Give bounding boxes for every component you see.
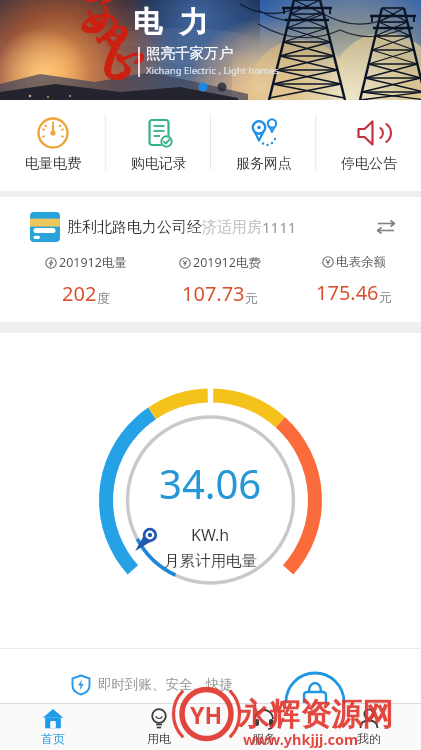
staticText: 购电记录: [131, 155, 187, 173]
button[interactable]: 用电: [106, 704, 211, 750]
staticText: 34.06: [159, 456, 262, 510]
staticText: 昌: [89, 18, 153, 80]
staticText: 电 力: [133, 1, 214, 41]
staticText: 201912电量: [59, 254, 127, 271]
button[interactable]: 首页: [0, 704, 106, 750]
staticText: 即时到账、安全、快捷: [98, 676, 233, 693]
button[interactable]: 201912电量: [18, 254, 153, 307]
button[interactable]: 服务网点: [211, 100, 316, 191]
button[interactable]: [285, 672, 345, 703]
button[interactable]: [375, 219, 397, 235]
staticText: 202: [62, 280, 97, 307]
staticText: Xichang Electric , Light homes: [146, 64, 279, 77]
staticText: 用电: [147, 731, 171, 746]
staticText: 度: [97, 290, 110, 306]
button[interactable]: 电量电费: [0, 100, 106, 191]
staticText: 首页: [41, 731, 65, 746]
staticText: www.yhkjjj.com: [243, 729, 359, 749]
staticText: 服务网点: [236, 155, 292, 173]
staticText: 永辉资源网: [238, 695, 393, 734]
button[interactable]: 我的: [316, 704, 421, 750]
staticText: 济适用房: [202, 218, 262, 237]
staticText: 201912电费: [193, 254, 261, 271]
button[interactable]: 胜利北路电力公司经: [30, 212, 397, 242]
button[interactable]: 购电记录: [106, 100, 211, 191]
staticText: 175.46: [316, 279, 379, 306]
staticText: 月累计用电量: [164, 551, 257, 571]
staticText: 停电公告: [341, 155, 397, 173]
staticText: KW.h: [191, 524, 230, 546]
staticText: 107.73: [182, 280, 245, 307]
staticText: 1111: [262, 217, 297, 237]
button[interactable]: 服务: [211, 704, 316, 750]
staticText: 胜利北路电力公司经: [67, 218, 202, 237]
staticText: 西: [71, 0, 129, 43]
staticText: 照亮千家万户: [146, 44, 233, 62]
staticText: 服务: [252, 731, 276, 746]
staticText: 电表余额: [336, 254, 386, 270]
button[interactable]: 电表余额: [287, 254, 421, 306]
staticText: 西: [71, 0, 129, 42]
staticText: 昌: [89, 19, 153, 81]
staticText: 电量电费: [25, 155, 81, 173]
staticText: 元: [379, 289, 392, 305]
staticText: 元: [245, 290, 258, 306]
staticText: 西: [70, 0, 128, 43]
button[interactable]: 停电公告: [316, 100, 421, 191]
button[interactable]: 201912电费: [153, 254, 287, 307]
staticText: 我的: [357, 731, 381, 746]
staticText: YH: [190, 699, 222, 730]
staticText: 昌: [88, 18, 152, 80]
staticText: 西: [70, 0, 128, 42]
staticText: 昌: [88, 19, 152, 81]
